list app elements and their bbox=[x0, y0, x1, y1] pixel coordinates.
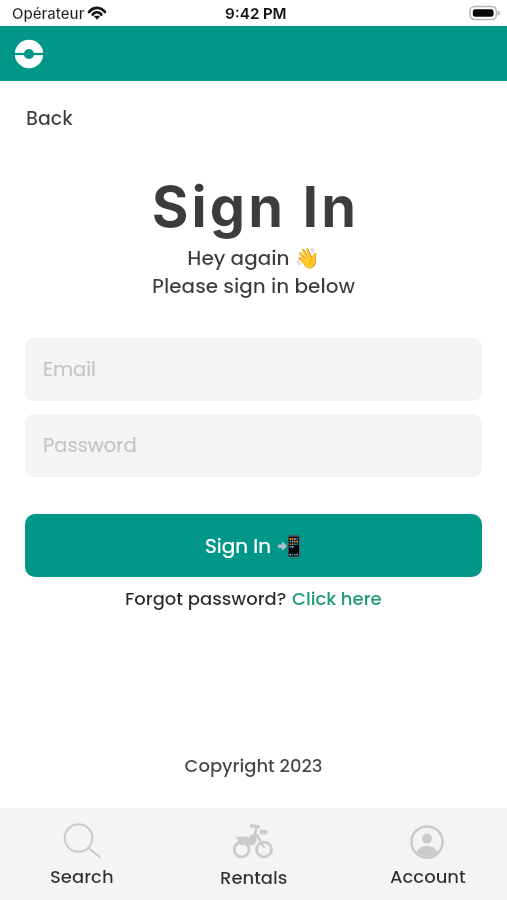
staticText: Click here bbox=[292, 586, 382, 611]
staticText: Email bbox=[43, 356, 96, 383]
button[interactable]: Password bbox=[25, 414, 482, 477]
staticText: Opérateur bbox=[12, 4, 85, 22]
staticText: Sign In 📲 bbox=[205, 532, 302, 560]
staticText: 9:42 PM bbox=[225, 4, 287, 22]
button[interactable]: Click here bbox=[292, 586, 382, 611]
button[interactable]: Back bbox=[20, 105, 79, 132]
staticText: Back bbox=[26, 105, 73, 132]
button[interactable]: Sign In 📲 bbox=[25, 514, 482, 577]
button[interactable]: Search bbox=[0, 808, 169, 900]
button[interactable]: Account bbox=[338, 808, 507, 900]
button[interactable]: Rentals bbox=[169, 808, 338, 900]
staticText: Forgot password? bbox=[125, 586, 292, 611]
button[interactable]: Email bbox=[25, 338, 482, 401]
staticText: Copyright 2023 bbox=[0, 753, 507, 778]
staticText: Search bbox=[50, 864, 114, 889]
staticText: Sign In bbox=[2, 173, 507, 241]
staticText: Hey again 👋 Please sign in below bbox=[0, 244, 507, 300]
staticText: Account bbox=[390, 864, 466, 889]
staticText: Password bbox=[43, 432, 137, 459]
button[interactable]: Home logo bbox=[14, 39, 44, 69]
staticText: Rentals bbox=[220, 865, 288, 890]
